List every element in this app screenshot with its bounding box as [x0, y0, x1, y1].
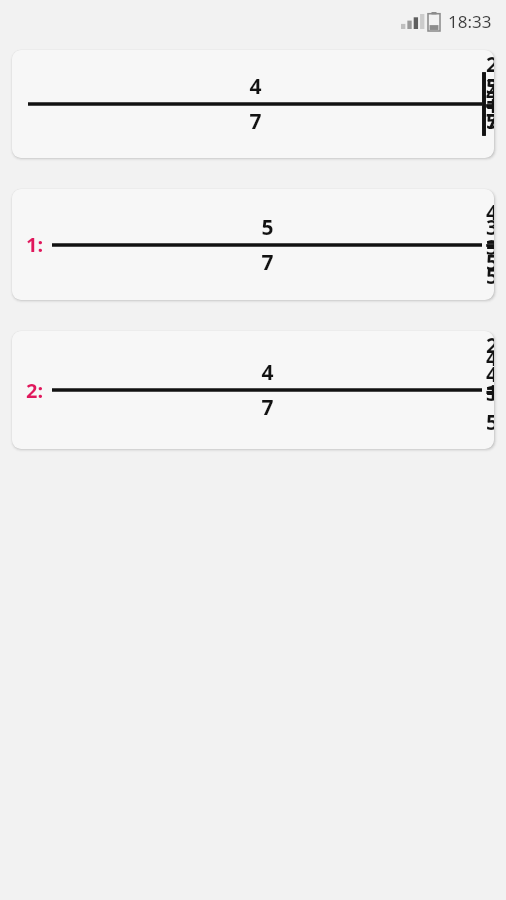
- staticText: 7: [261, 248, 274, 277]
- staticText: 1:: [26, 231, 44, 258]
- other: Signal strength: [401, 14, 421, 29]
- staticText: 4: [249, 72, 262, 101]
- button[interactable]: 4: [12, 50, 494, 158]
- other: Battery: [428, 12, 440, 31]
- button[interactable]: 2:: [12, 331, 494, 449]
- button[interactable]: 1:: [12, 189, 494, 300]
- staticText: 2:: [26, 377, 44, 404]
- staticText: 4: [261, 358, 274, 387]
- staticText: 7: [261, 393, 274, 422]
- staticText: 7: [249, 107, 262, 136]
- staticText: 5: [261, 213, 274, 242]
- staticText: 18:33: [448, 10, 492, 33]
